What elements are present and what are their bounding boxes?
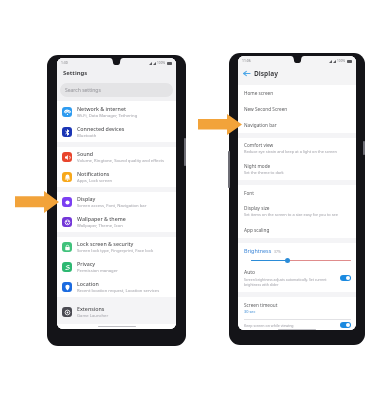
- staticText: Extensions: [77, 305, 105, 312]
- button[interactable]: Back: [242, 69, 251, 78]
- button[interactable]: Navigation bar: [238, 117, 356, 133]
- staticText: App scaling: [244, 227, 270, 233]
- staticText: 30 sec: [244, 309, 256, 314]
- staticText: Set the theme to dark: [244, 170, 284, 175]
- staticText: New Second Screen: [244, 106, 288, 112]
- staticText: Recent location request, Location servic…: [77, 288, 160, 294]
- staticText: Screen brightness adjusts automatically.…: [244, 277, 337, 287]
- staticText: Set items on the screen to a size easy f…: [244, 212, 338, 217]
- staticText: 100%: [337, 59, 346, 63]
- button[interactable]: Screen timeout: [238, 297, 356, 319]
- button[interactable]: Keep screen on while viewing: [238, 320, 356, 328]
- button[interactable]: Home screen: [238, 85, 356, 101]
- staticText: 1:30: [61, 60, 68, 65]
- staticText: 37%: [274, 249, 281, 254]
- staticText: Navigation bar: [244, 122, 277, 128]
- button[interactable]: Comfort view: [238, 138, 356, 159]
- staticText: Home screen: [244, 90, 274, 96]
- staticText: Auto: [244, 269, 256, 276]
- staticText: Volume, Ringtone, Sound quality and effe…: [77, 158, 164, 164]
- staticText: Notifications: [77, 170, 110, 177]
- staticText: Settings: [63, 69, 88, 77]
- staticText: Connected devices: [77, 125, 125, 132]
- staticText: Display: [77, 195, 96, 202]
- staticText: Bluetooth: [77, 133, 97, 139]
- button[interactable]: Search settings: [60, 83, 173, 97]
- staticText: Permission manager: [77, 268, 118, 274]
- staticText: Lock screen & security: [77, 240, 134, 247]
- staticText: Apps, Lock screen: [77, 178, 113, 184]
- button[interactable]: Display: [57, 192, 176, 212]
- staticText: Screen lock type, Fingerprint, Face lock: [77, 248, 154, 254]
- staticText: Reduce eye strain and keep at a light on…: [244, 149, 337, 154]
- staticText: Screen timeout: [244, 302, 278, 308]
- button[interactable]: Auto: [238, 267, 356, 292]
- button[interactable]: Sound: [57, 147, 176, 167]
- button[interactable]: Font: [238, 185, 356, 201]
- staticText: Search settings: [65, 87, 101, 94]
- button[interactable]: Location: [57, 277, 176, 297]
- button[interactable]: Wallpaper & theme: [57, 212, 176, 232]
- staticText: Display: [254, 69, 278, 78]
- staticText: Display size: [244, 205, 270, 211]
- staticText: Privacy: [77, 260, 96, 267]
- staticText: Game Launcher: [77, 313, 109, 319]
- button[interactable]: Privacy: [57, 257, 176, 277]
- button[interactable]: Extensions: [57, 302, 176, 322]
- button[interactable]: Network & internet: [57, 102, 176, 122]
- staticText: 100%: [157, 61, 166, 65]
- staticText: Keep screen on while viewing: [244, 323, 340, 328]
- staticText: Wallpaper & theme: [77, 215, 126, 222]
- button[interactable]: Lock screen & security: [57, 237, 176, 257]
- button[interactable]: New Second Screen: [238, 101, 356, 117]
- staticText: Font: [244, 190, 254, 196]
- staticText: Wallpaper, Theme, Icon: [77, 223, 123, 229]
- staticText: 11:06: [242, 58, 251, 63]
- button[interactable]: Connected devices: [57, 122, 176, 142]
- staticText: Screen access, Font, Navigation bar: [77, 203, 147, 209]
- button[interactable]: Display size: [238, 201, 356, 222]
- button[interactable]: App scaling: [238, 222, 356, 238]
- staticText: Location: [77, 280, 99, 287]
- staticText: Brightness: [244, 247, 272, 254]
- staticText: Network & internet: [77, 105, 127, 112]
- staticText: Wi-Fi, Data Manager, Tethering: [77, 113, 138, 119]
- staticText: Comfort view: [244, 142, 274, 148]
- button[interactable]: Night mode: [238, 159, 356, 180]
- button[interactable]: Notifications: [57, 167, 176, 187]
- staticText: Night mode: [244, 163, 271, 169]
- staticText: Sound: [77, 150, 94, 157]
